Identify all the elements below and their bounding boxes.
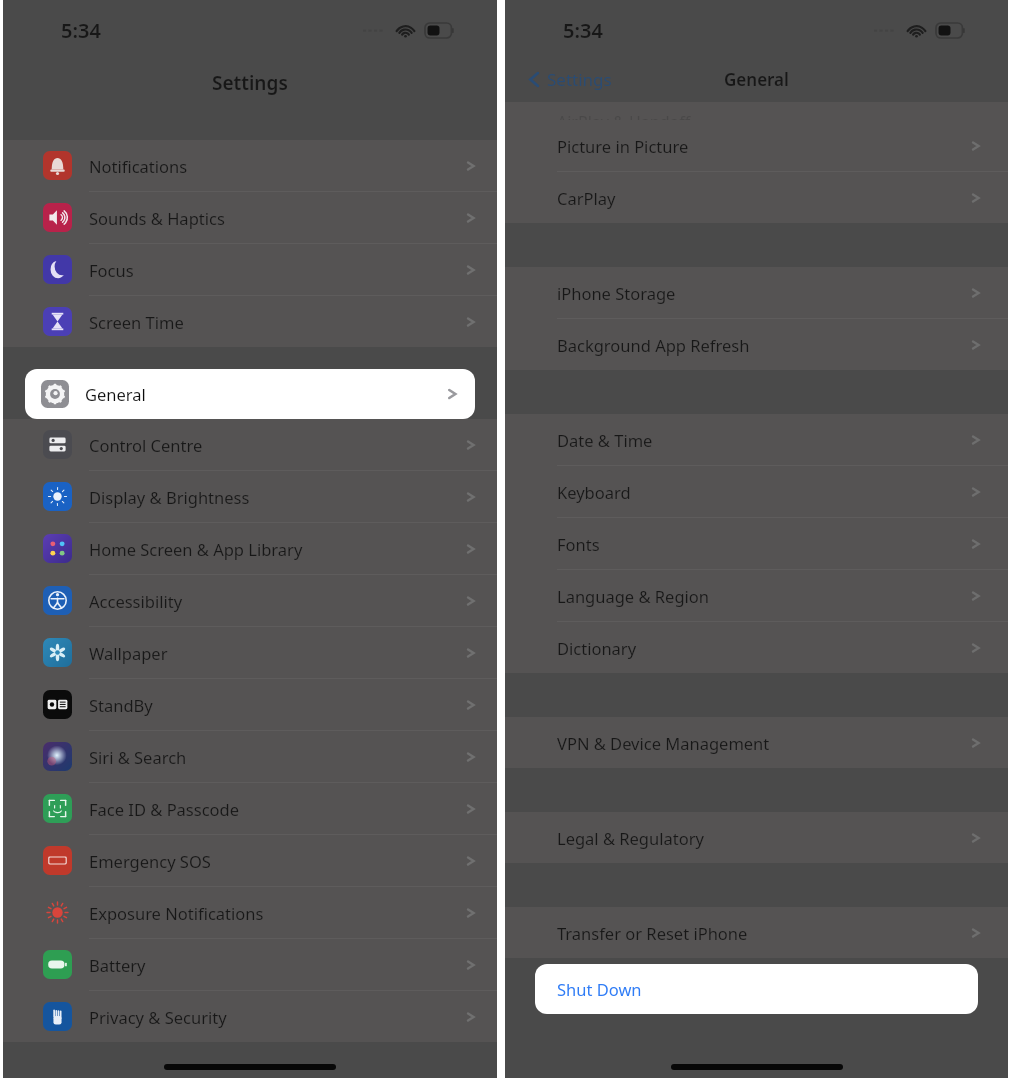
button[interactable]: Dictionary bbox=[505, 622, 1008, 673]
button[interactable]: Privacy & Security bbox=[3, 991, 497, 1042]
staticText: Battery bbox=[89, 954, 146, 976]
staticText: Accessibility bbox=[89, 590, 183, 612]
button[interactable]: General bbox=[25, 369, 475, 419]
staticText: Fonts bbox=[557, 533, 600, 555]
staticText: Date & Time bbox=[557, 429, 653, 451]
button[interactable]: Siri & Search bbox=[3, 731, 497, 783]
staticText: 5:34 bbox=[563, 17, 603, 44]
staticText: General bbox=[85, 383, 146, 405]
staticText: Language & Region bbox=[557, 585, 709, 607]
staticText: Transfer or Reset iPhone bbox=[557, 922, 748, 944]
staticText: Notifications bbox=[89, 155, 188, 177]
staticText: Shut Down bbox=[557, 978, 642, 1000]
staticText: Keyboard bbox=[557, 481, 631, 503]
staticText: Focus bbox=[89, 259, 134, 281]
staticText: Picture in Picture bbox=[557, 135, 689, 157]
staticText: Home Screen & App Library bbox=[89, 538, 303, 560]
button[interactable]: iPhone Storage bbox=[505, 267, 1008, 319]
staticText: iPhone Storage bbox=[557, 282, 676, 304]
button[interactable]: Control Centre bbox=[3, 419, 497, 471]
staticText: Settings bbox=[212, 70, 288, 96]
staticText: General bbox=[724, 68, 789, 91]
button[interactable]: Fonts bbox=[505, 518, 1008, 570]
button[interactable]: Display & Brightness bbox=[3, 471, 497, 523]
button[interactable]: Home Screen & App Library bbox=[3, 523, 497, 575]
button[interactable]: Background App Refresh bbox=[505, 319, 1008, 370]
staticText: Siri & Search bbox=[89, 746, 187, 768]
button[interactable]: Notifications bbox=[3, 140, 497, 192]
staticText: StandBy bbox=[89, 694, 153, 716]
button[interactable]: Accessibility bbox=[3, 575, 497, 627]
button[interactable]: Shut Down bbox=[535, 964, 978, 1014]
staticText: Exposure Notifications bbox=[89, 902, 264, 924]
button[interactable]: Picture in Picture bbox=[505, 120, 1008, 172]
button[interactable]: Transfer or Reset iPhone bbox=[505, 907, 1008, 958]
button[interactable]: Date & Time bbox=[505, 414, 1008, 466]
staticText: Display & Brightness bbox=[89, 486, 250, 508]
staticText: Settings bbox=[547, 68, 612, 91]
staticText: Wallpaper bbox=[89, 642, 168, 664]
button[interactable]: CarPlay bbox=[505, 172, 1008, 223]
button[interactable]: Sounds & Haptics bbox=[3, 192, 497, 244]
staticText: Face ID & Passcode bbox=[89, 798, 240, 820]
button[interactable]: VPN & Device Management bbox=[505, 717, 1008, 768]
staticText: Privacy & Security bbox=[89, 1006, 227, 1028]
staticText: CarPlay bbox=[557, 187, 616, 209]
button[interactable]: Legal & Regulatory bbox=[505, 812, 1008, 863]
staticText: VPN & Device Management bbox=[557, 732, 770, 754]
button[interactable]: Language & Region bbox=[505, 570, 1008, 622]
button[interactable]: Emergency SOS bbox=[3, 835, 497, 887]
staticText: Sounds & Haptics bbox=[89, 207, 225, 229]
button[interactable]: StandBy bbox=[3, 679, 497, 731]
button[interactable]: Keyboard bbox=[505, 466, 1008, 518]
staticText: Legal & Regulatory bbox=[557, 827, 704, 849]
button[interactable]: Wallpaper bbox=[3, 627, 497, 679]
staticText: Dictionary bbox=[557, 637, 637, 659]
staticText: Screen Time bbox=[89, 311, 184, 333]
button[interactable]: Screen Time bbox=[3, 296, 497, 347]
button[interactable]: Exposure Notifications bbox=[3, 887, 497, 939]
staticText: Background App Refresh bbox=[557, 334, 750, 356]
staticText: Emergency SOS bbox=[89, 850, 211, 872]
staticText: Control Centre bbox=[89, 434, 203, 456]
button[interactable]: Face ID & Passcode bbox=[3, 783, 497, 835]
staticText: 5:34 bbox=[61, 17, 101, 44]
button[interactable]: Focus bbox=[3, 244, 497, 296]
button[interactable]: Battery bbox=[3, 939, 497, 991]
button[interactable]: Settings bbox=[523, 62, 616, 97]
